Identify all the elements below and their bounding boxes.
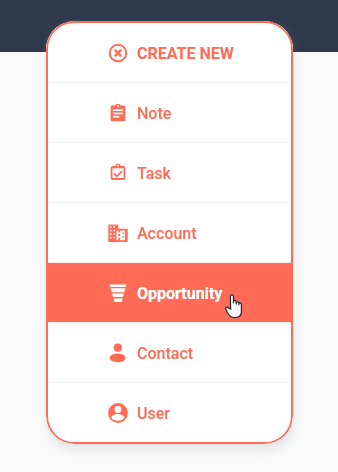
staticText: Account <box>137 224 197 243</box>
staticText: CREATE NEW <box>137 44 234 63</box>
staticText: Note <box>137 104 172 123</box>
button[interactable]: CREATE NEW <box>46 23 293 83</box>
button[interactable]: Contact <box>46 323 293 383</box>
button[interactable]: Opportunity <box>46 263 293 323</box>
staticText: User <box>137 404 170 423</box>
button[interactable]: Task <box>46 143 293 203</box>
button[interactable]: Note <box>46 83 293 143</box>
staticText: Opportunity <box>137 284 223 303</box>
button[interactable]: Account <box>46 203 293 263</box>
staticText: Task <box>137 164 171 183</box>
button[interactable]: User <box>46 383 293 443</box>
staticText: Contact <box>137 344 194 363</box>
